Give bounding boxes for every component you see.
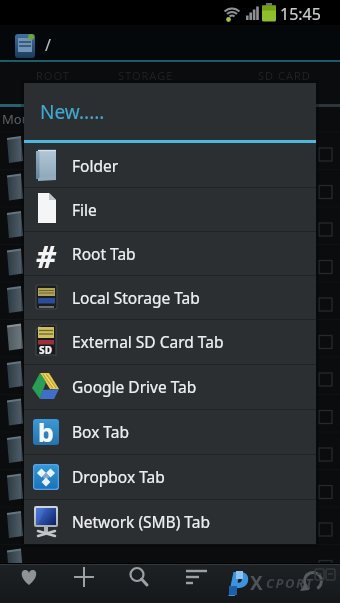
button[interactable] <box>174 563 214 603</box>
staticText: Google Drive Tab <box>72 376 197 397</box>
staticText: External SD Card Tab <box>72 331 224 352</box>
button[interactable] <box>64 563 104 603</box>
staticText: SD <box>39 343 52 357</box>
staticText: Root Tab <box>72 243 136 264</box>
button[interactable] <box>15 33 36 58</box>
button[interactable] <box>119 563 159 603</box>
staticText: P <box>228 561 249 603</box>
staticText: STORAGE <box>118 68 174 83</box>
staticText: New..... <box>40 99 105 125</box>
button[interactable]: Folder <box>24 143 316 187</box>
button[interactable]: SD <box>24 319 316 364</box>
staticText: Mounted <box>2 110 58 128</box>
button[interactable]: File <box>24 187 316 231</box>
button[interactable]: # <box>24 231 316 275</box>
button[interactable]: Local Storage Tab <box>24 275 316 319</box>
button[interactable]: Dropbox Tab <box>24 454 316 499</box>
button[interactable] <box>9 563 49 603</box>
button[interactable]: Network (SMB) Tab <box>24 499 316 544</box>
button[interactable] <box>229 563 269 603</box>
staticText: Local Storage Tab <box>72 287 200 308</box>
button[interactable]: b <box>24 409 316 454</box>
staticText: ROOT <box>36 68 70 83</box>
staticText: SD CARD <box>258 68 311 83</box>
staticText: Folder <box>72 155 119 176</box>
staticText: 15:45 <box>280 3 321 25</box>
staticText: File <box>72 199 97 220</box>
staticText: # <box>36 235 57 271</box>
staticText: / <box>45 34 51 56</box>
staticText: X <box>250 570 263 596</box>
button[interactable]: Google Drive Tab <box>24 364 316 409</box>
button[interactable] <box>291 563 331 603</box>
staticText: Network (SMB) Tab <box>72 511 210 532</box>
staticText: Dropbox Tab <box>72 466 165 487</box>
staticText: Box Tab <box>72 421 129 442</box>
staticText: CPORT <box>266 574 314 592</box>
staticText: b <box>38 415 54 449</box>
